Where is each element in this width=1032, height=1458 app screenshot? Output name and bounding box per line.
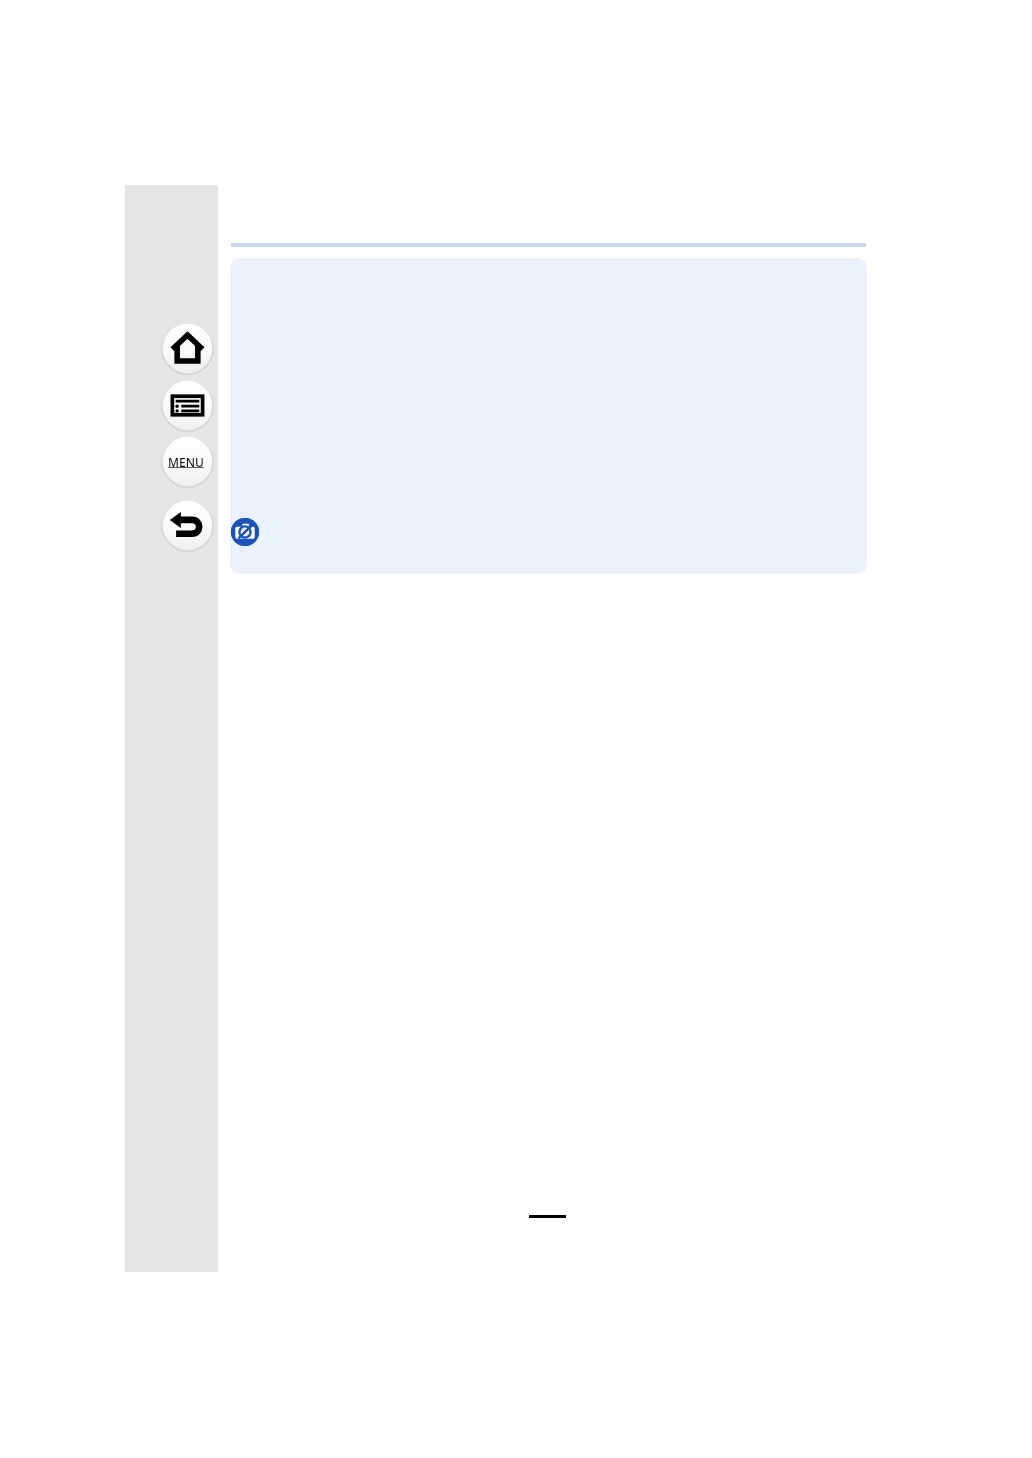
button[interactable]: Home — [161, 322, 214, 375]
button[interactable]: Back — [161, 499, 214, 552]
staticText: MENU — [168, 454, 204, 470]
other: Recording not available — [231, 518, 259, 546]
button[interactable]: MENU — [161, 435, 214, 488]
button[interactable]: Display — [161, 379, 214, 432]
